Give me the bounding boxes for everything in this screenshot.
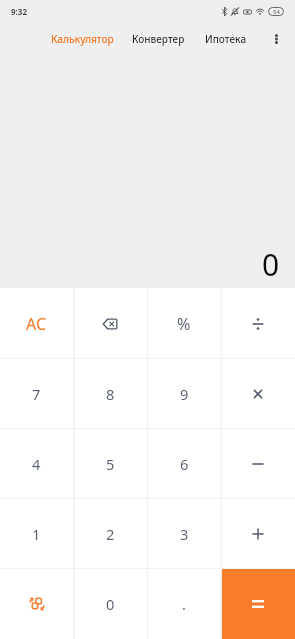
button[interactable]: Convert: [0, 569, 73, 639]
button[interactable]: 5: [73, 429, 147, 499]
staticText: 5: [106, 454, 115, 474]
button[interactable]: More options: [258, 24, 295, 55]
staticText: 9:32: [11, 6, 27, 17]
button[interactable]: AC: [0, 288, 73, 359]
button[interactable]: Backspace: [73, 288, 147, 359]
button[interactable]: Калькулятор: [47, 28, 118, 52]
button[interactable]: 3: [147, 499, 221, 569]
button[interactable]: Equals: [221, 569, 295, 639]
staticText: Калькулятор: [51, 32, 114, 46]
staticText: 1: [32, 524, 41, 544]
button[interactable]: 4: [0, 429, 73, 499]
staticText: AC: [26, 313, 47, 335]
button[interactable]: %: [147, 288, 221, 359]
button[interactable]: .: [147, 569, 221, 639]
staticText: 3: [180, 524, 189, 544]
button[interactable]: 2: [73, 499, 147, 569]
staticText: .: [182, 594, 186, 614]
staticText: 7: [32, 384, 41, 404]
staticText: 4: [32, 454, 41, 474]
button[interactable]: Конвертер: [128, 28, 189, 52]
staticText: 8: [106, 384, 115, 404]
staticText: 54: [273, 8, 280, 16]
button[interactable]: 6: [147, 429, 221, 499]
staticText: 6: [180, 454, 189, 474]
staticText: 9: [180, 384, 189, 404]
staticText: Ипотека: [205, 32, 247, 46]
button[interactable]: Multiply: [221, 359, 295, 429]
button[interactable]: Divide: [221, 288, 295, 359]
button[interactable]: 1: [0, 499, 73, 569]
button[interactable]: 8: [73, 359, 147, 429]
staticText: 0: [106, 594, 115, 614]
staticText: %: [177, 313, 191, 335]
button[interactable]: 0: [73, 569, 147, 639]
staticText: Конвертер: [132, 32, 185, 46]
button[interactable]: 9: [147, 359, 221, 429]
staticText: 2: [106, 524, 115, 544]
button[interactable]: 7: [0, 359, 73, 429]
button[interactable]: Ипотека: [201, 28, 251, 52]
button[interactable]: Plus: [221, 499, 295, 569]
staticText: 0: [262, 244, 280, 285]
button[interactable]: Minus: [221, 429, 295, 499]
